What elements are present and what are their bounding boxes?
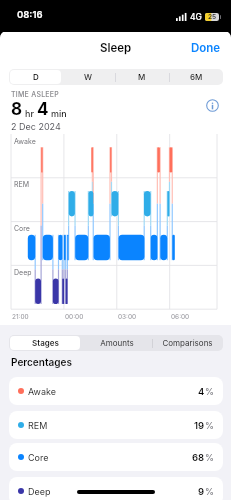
staticText: Stages [32,338,59,348]
staticText: Core [28,452,49,463]
staticText: 03:00 [118,313,137,321]
staticText: 4 [37,99,49,120]
staticText: Core [14,224,30,232]
button[interactable]: Comparisons [152,335,223,351]
staticText: 08:16 [17,9,43,20]
staticText: 21:00 [12,313,29,321]
button[interactable]: M [115,69,169,85]
staticText: % [205,420,214,431]
staticText: % [205,452,214,463]
button[interactable]: Stages [9,335,81,351]
staticText: 8 [11,99,23,120]
staticText: 2 Dec 2024 [11,121,61,132]
staticText: Amounts [100,338,134,348]
staticText: Deep [28,486,51,497]
staticText: M [138,72,146,82]
staticText: Sleep [100,41,132,55]
button[interactable]: D [9,69,62,85]
button[interactable]: Info [206,99,219,112]
staticText: 68 [192,452,205,463]
button[interactable]: Core [9,443,223,471]
button[interactable]: Deep [9,477,223,500]
button[interactable]: REM [9,411,223,439]
button[interactable]: 6M [169,69,223,85]
staticText: Deep [14,268,32,276]
staticText: min [51,108,67,119]
staticText: W [84,72,93,82]
staticText: Comparisons [162,338,213,348]
staticText: Awake [28,386,57,397]
staticText: Done [191,41,221,55]
button[interactable]: Awake [9,377,223,405]
staticText: REM [28,420,48,431]
button[interactable]: W [62,69,115,85]
staticText: 4G [190,12,202,22]
staticText: Percentages [11,356,72,368]
staticText: D [33,72,39,82]
staticText: 06:00 [171,313,190,321]
button[interactable]: Amounts [81,335,152,351]
staticText: % [205,486,214,497]
staticText: 9 [198,486,205,497]
staticText: 00:00 [65,313,84,321]
staticText: hr [25,108,34,119]
staticText: 19 [194,420,205,431]
staticText: TIME ASLEEP [11,90,60,98]
staticText: 6M [190,72,203,82]
staticText: Awake [14,137,36,145]
staticText: 4 [198,386,205,397]
staticText: 25 [208,13,217,21]
staticText: % [205,386,214,397]
button[interactable]: Done [181,36,231,60]
staticText: REM [14,180,30,188]
